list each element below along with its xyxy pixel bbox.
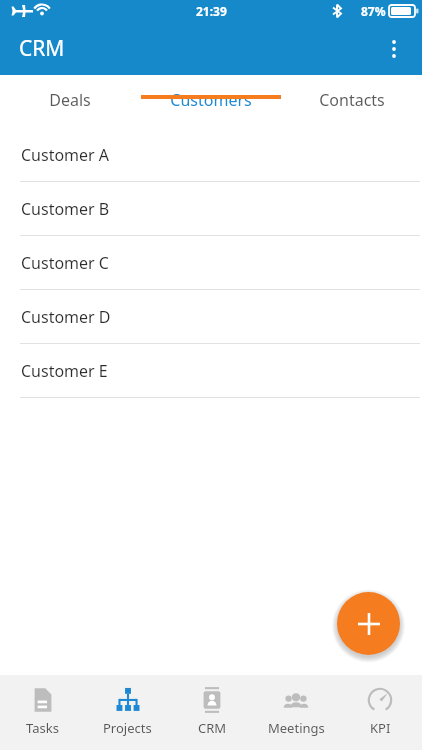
staticText: Customers <box>170 89 252 111</box>
button[interactable]: Customer C <box>0 236 422 290</box>
button[interactable]: Customer D <box>0 290 422 344</box>
staticText: Customer A <box>21 144 110 166</box>
button[interactable]: Meetings <box>254 675 338 750</box>
staticText: CRM <box>19 34 65 63</box>
button[interactable]: KPI <box>338 675 422 750</box>
staticText: Customer B <box>21 198 110 220</box>
button[interactable]: More options <box>372 27 416 71</box>
button[interactable]: Contacts <box>281 75 422 128</box>
staticText: Customer D <box>21 306 111 328</box>
staticText: CRM <box>198 719 227 737</box>
staticText: Customer C <box>21 252 109 274</box>
staticText: 21:39 <box>196 3 227 19</box>
button[interactable]: Customer B <box>0 182 422 236</box>
staticText: Meetings <box>268 719 325 737</box>
button[interactable]: Tasks <box>0 675 85 750</box>
staticText: KPI <box>370 719 391 737</box>
button[interactable]: CRM <box>170 675 254 750</box>
staticText: Projects <box>103 719 152 737</box>
staticText: Deals <box>49 89 91 111</box>
staticText: Tasks <box>26 719 59 737</box>
button[interactable]: Customer A <box>0 128 422 182</box>
button[interactable]: Customers <box>140 75 281 128</box>
button[interactable]: Add <box>337 592 400 655</box>
button[interactable]: Deals <box>0 75 140 128</box>
button[interactable]: Projects <box>85 675 170 750</box>
staticText: Contacts <box>319 89 385 111</box>
button[interactable]: Customer E <box>0 344 422 398</box>
staticText: 87% <box>361 3 386 19</box>
staticText: Customer E <box>21 360 108 382</box>
